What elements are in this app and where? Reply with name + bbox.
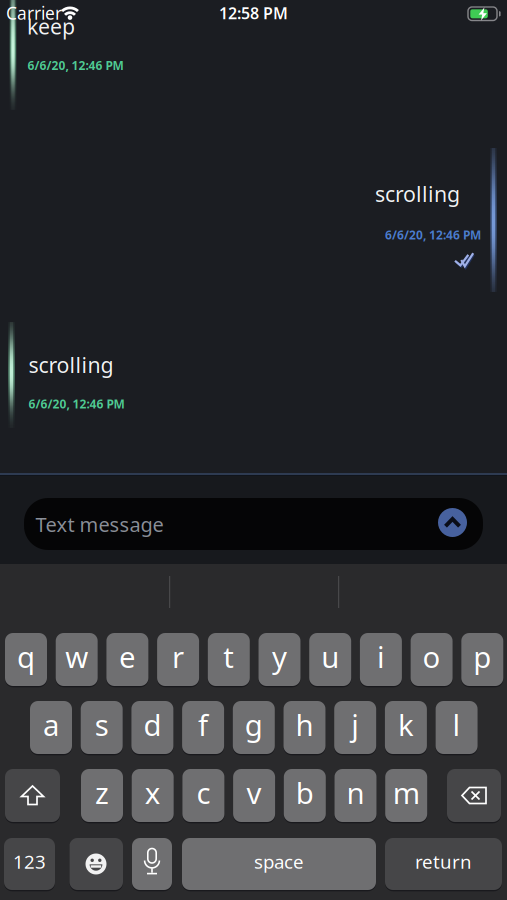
staticText: v — [247, 773, 262, 812]
staticText: t — [223, 637, 234, 676]
staticText: l — [453, 705, 461, 744]
button[interactable] — [447, 769, 501, 822]
staticText: r — [172, 637, 184, 676]
button[interactable]: i — [360, 633, 402, 686]
button[interactable]: space — [182, 838, 376, 890]
staticText: Text message — [35, 511, 163, 538]
staticText: z — [95, 773, 109, 812]
staticText: Carrier — [6, 1, 62, 24]
button[interactable]: 123 — [4, 838, 55, 890]
staticText: e — [119, 637, 136, 676]
staticText: scrolling — [375, 179, 460, 208]
button[interactable]: t — [208, 633, 250, 686]
staticText: a — [43, 705, 59, 744]
staticText: m — [393, 773, 420, 812]
staticText: q — [17, 637, 35, 676]
button[interactable]: k — [385, 701, 427, 754]
staticText: 6/6/20, 12:46 PM — [27, 57, 123, 73]
button[interactable]: j — [334, 701, 376, 754]
button[interactable]: s — [81, 701, 123, 754]
staticText: d — [143, 705, 161, 744]
button[interactable]: u — [309, 633, 351, 686]
staticText: n — [346, 773, 364, 812]
staticText: u — [321, 637, 339, 676]
button[interactable]: v — [233, 769, 275, 822]
staticText: return — [415, 849, 472, 874]
staticText: j — [351, 705, 359, 744]
button[interactable]: n — [334, 769, 376, 822]
staticText: 123 — [13, 849, 46, 874]
staticText: 6/6/20, 12:46 PM — [28, 396, 124, 412]
button[interactable]: y — [258, 633, 300, 686]
button[interactable]: a — [30, 701, 72, 754]
button[interactable]: w — [56, 633, 98, 686]
button[interactable]: b — [284, 769, 326, 822]
staticText: h — [295, 705, 313, 744]
button[interactable]: h — [283, 701, 325, 754]
button[interactable]: o — [411, 633, 453, 686]
staticText: i — [377, 637, 385, 676]
staticText: x — [145, 773, 161, 812]
staticText: b — [296, 773, 314, 812]
staticText: w — [65, 637, 88, 676]
button[interactable] — [438, 508, 467, 537]
button[interactable]: z — [81, 769, 123, 822]
button[interactable] — [132, 838, 172, 890]
button[interactable]: q — [5, 633, 47, 686]
staticText: f — [198, 705, 208, 744]
staticText: p — [473, 637, 491, 676]
button[interactable]: f — [182, 701, 224, 754]
staticText: o — [423, 637, 441, 676]
button[interactable] — [69, 838, 123, 890]
staticText: 12:58 PM — [219, 2, 288, 24]
staticText: k — [398, 705, 414, 744]
staticText: 6/6/20, 12:46 PM — [385, 227, 481, 243]
button[interactable]: e — [106, 633, 148, 686]
button[interactable]: x — [132, 769, 174, 822]
staticText: space — [254, 849, 304, 874]
button[interactable]: d — [131, 701, 173, 754]
button[interactable]: p — [461, 633, 503, 686]
button[interactable] — [5, 769, 60, 822]
button[interactable]: return — [385, 838, 502, 890]
staticText: scrolling — [28, 350, 113, 379]
staticText: keep — [27, 12, 75, 40]
button[interactable]: r — [157, 633, 199, 686]
staticText: y — [272, 637, 287, 676]
staticText: g — [245, 705, 263, 744]
staticText: s — [95, 705, 109, 744]
button[interactable]: g — [233, 701, 275, 754]
button[interactable]: c — [182, 769, 224, 822]
button[interactable]: m — [385, 769, 427, 822]
button[interactable]: Text message — [24, 498, 483, 550]
button[interactable]: l — [436, 701, 478, 754]
staticText: c — [196, 773, 210, 812]
